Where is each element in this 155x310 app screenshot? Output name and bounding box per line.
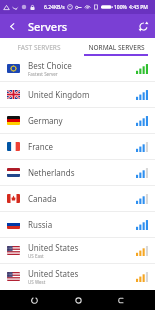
staticText: NORMAL SERVERS [88, 43, 145, 52]
button[interactable]: Refresh [131, 14, 155, 38]
staticText: Germany [28, 115, 63, 126]
button[interactable]: Netherlands [0, 160, 155, 185]
staticText: United Kingdom [28, 89, 90, 100]
button[interactable]: Back [0, 14, 24, 38]
button[interactable]: NORMAL SERVERS [77, 38, 155, 56]
staticText: 6.24KB/s [44, 4, 65, 11]
button[interactable]: Best Choice [0, 56, 155, 81]
staticText: Canada [28, 193, 57, 204]
button[interactable]: United States [0, 238, 155, 263]
staticText: FAST SERVERS [17, 43, 61, 52]
staticText: United States [28, 242, 79, 253]
staticText: Best Choice [28, 60, 72, 71]
staticText: 4:43 PM [129, 4, 148, 11]
button[interactable]: Germany [0, 108, 155, 133]
button[interactable]: Recents [24, 290, 44, 310]
staticText: France [28, 141, 54, 152]
staticText: United States [28, 268, 79, 279]
button[interactable]: FAST SERVERS [0, 38, 77, 56]
staticText: US West [28, 279, 46, 285]
staticText: 100% [114, 4, 127, 11]
staticText: Russia [28, 219, 53, 230]
staticText: Netherlands [28, 167, 75, 178]
button[interactable]: United Kingdom [0, 82, 155, 107]
button[interactable]: France [0, 134, 155, 159]
staticText: Fastest Server [28, 71, 58, 77]
button[interactable]: Home [68, 290, 88, 310]
button[interactable]: United States [0, 264, 155, 289]
button[interactable]: Canada [0, 186, 155, 211]
staticText: Servers [28, 19, 68, 34]
button[interactable]: Russia [0, 212, 155, 237]
staticText: US East [28, 253, 44, 259]
button[interactable]: Back [111, 290, 131, 310]
